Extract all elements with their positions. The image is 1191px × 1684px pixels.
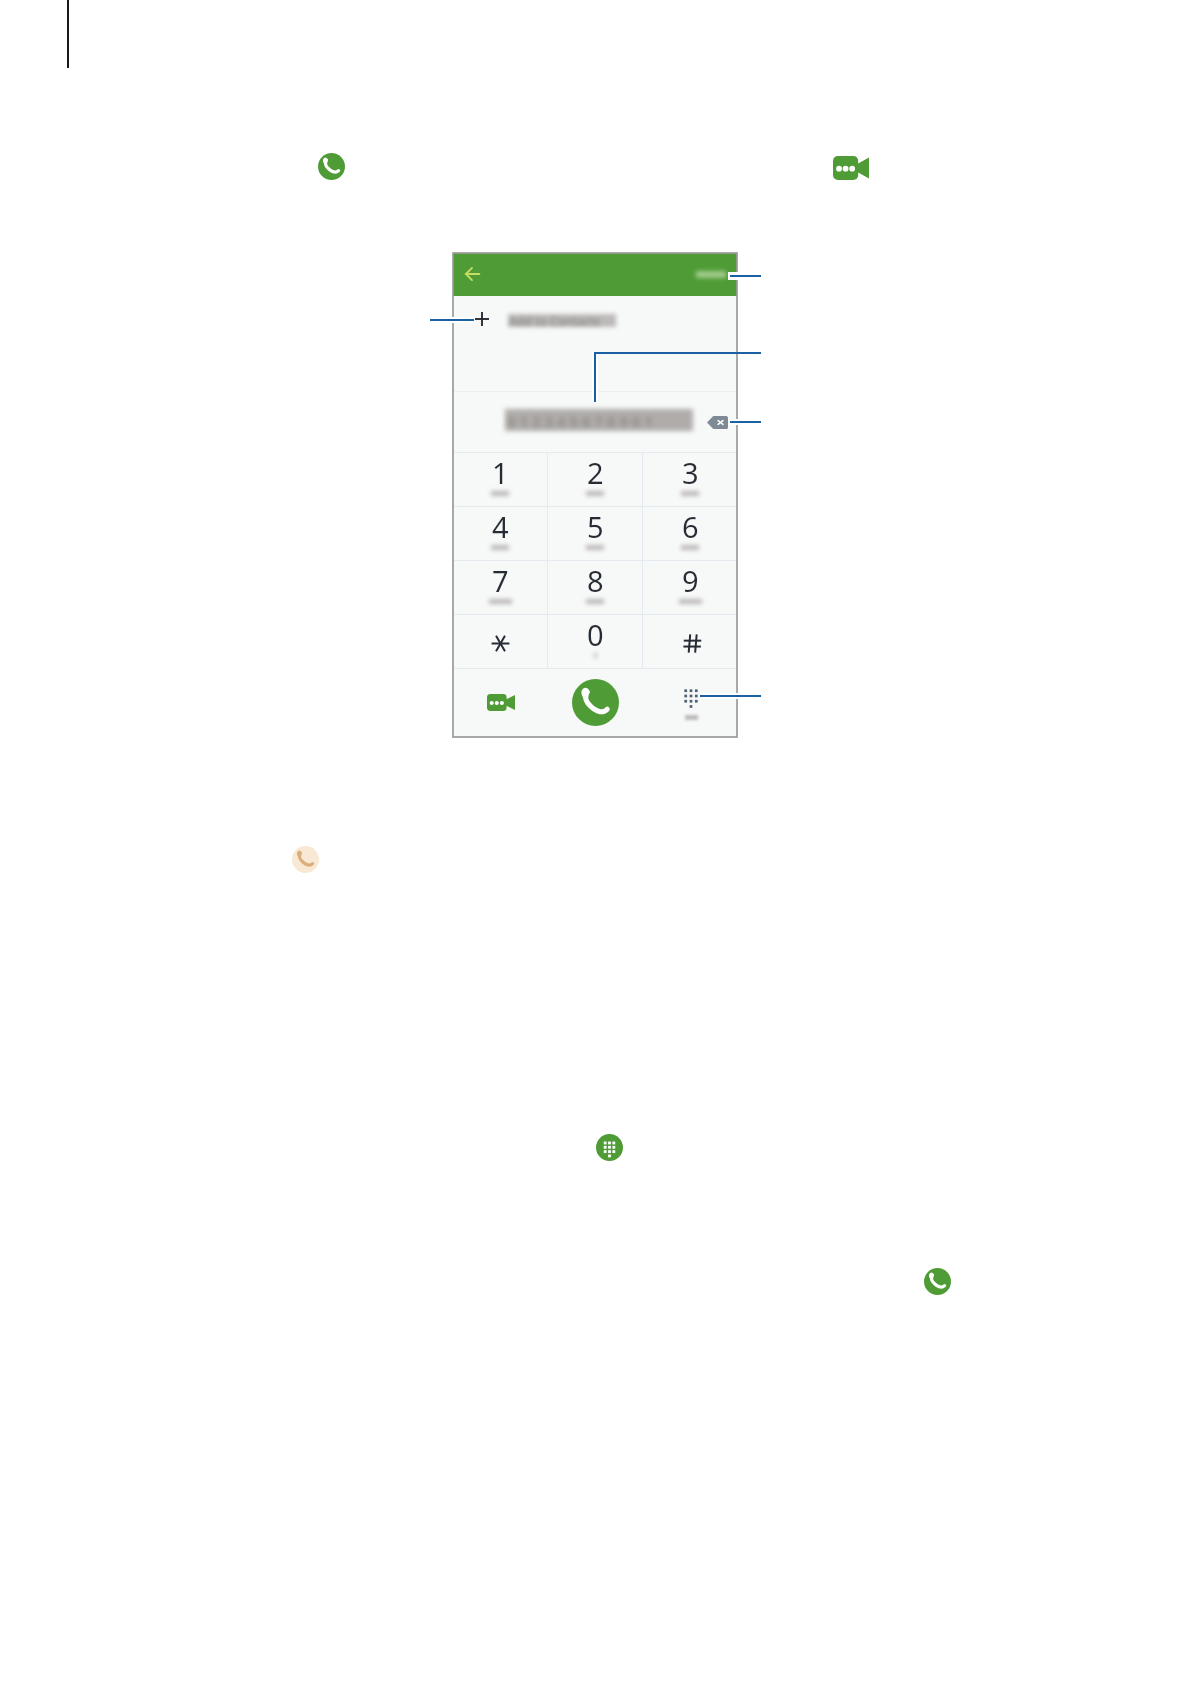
button[interactable]: 5: [548, 507, 642, 560]
button[interactable]: Back: [464, 266, 480, 282]
button[interactable]: [690, 265, 730, 284]
button[interactable]: Backspace: [707, 416, 728, 429]
button[interactable]: 2: [548, 453, 642, 506]
button[interactable]: 0: [548, 615, 642, 668]
staticText: 7: [492, 561, 509, 600]
button[interactable]: 6: [643, 507, 737, 560]
button[interactable]: Add to Contacts: [453, 296, 737, 343]
button[interactable]: 9: [643, 561, 737, 614]
staticText: 5: [587, 507, 604, 546]
staticText: Add to Contacts: [509, 313, 601, 329]
button[interactable]: 1: [453, 453, 547, 506]
staticText: 4: [492, 507, 509, 546]
staticText: 8: [587, 561, 604, 600]
button[interactable]: 8: [548, 561, 642, 614]
button[interactable]: Keypad: [674, 681, 704, 719]
staticText: 1: [492, 453, 509, 492]
button[interactable]: Call: [572, 679, 619, 726]
staticText: 3: [682, 453, 699, 492]
staticText: 0: [587, 615, 604, 654]
button[interactable]: 4: [453, 507, 547, 560]
button[interactable]: 3: [643, 453, 737, 506]
other: Video call: [833, 156, 869, 180]
staticText: 2: [587, 453, 604, 492]
staticText: 9: [682, 561, 699, 600]
button[interactable]: 7: [453, 561, 547, 614]
staticText: 0 1 2 3 4 5 6 7 8 9 0 1: [507, 411, 653, 431]
button[interactable]: [453, 615, 547, 668]
button[interactable]: [643, 615, 737, 668]
button[interactable]: Video call: [487, 694, 515, 711]
staticText: 6: [682, 507, 699, 546]
